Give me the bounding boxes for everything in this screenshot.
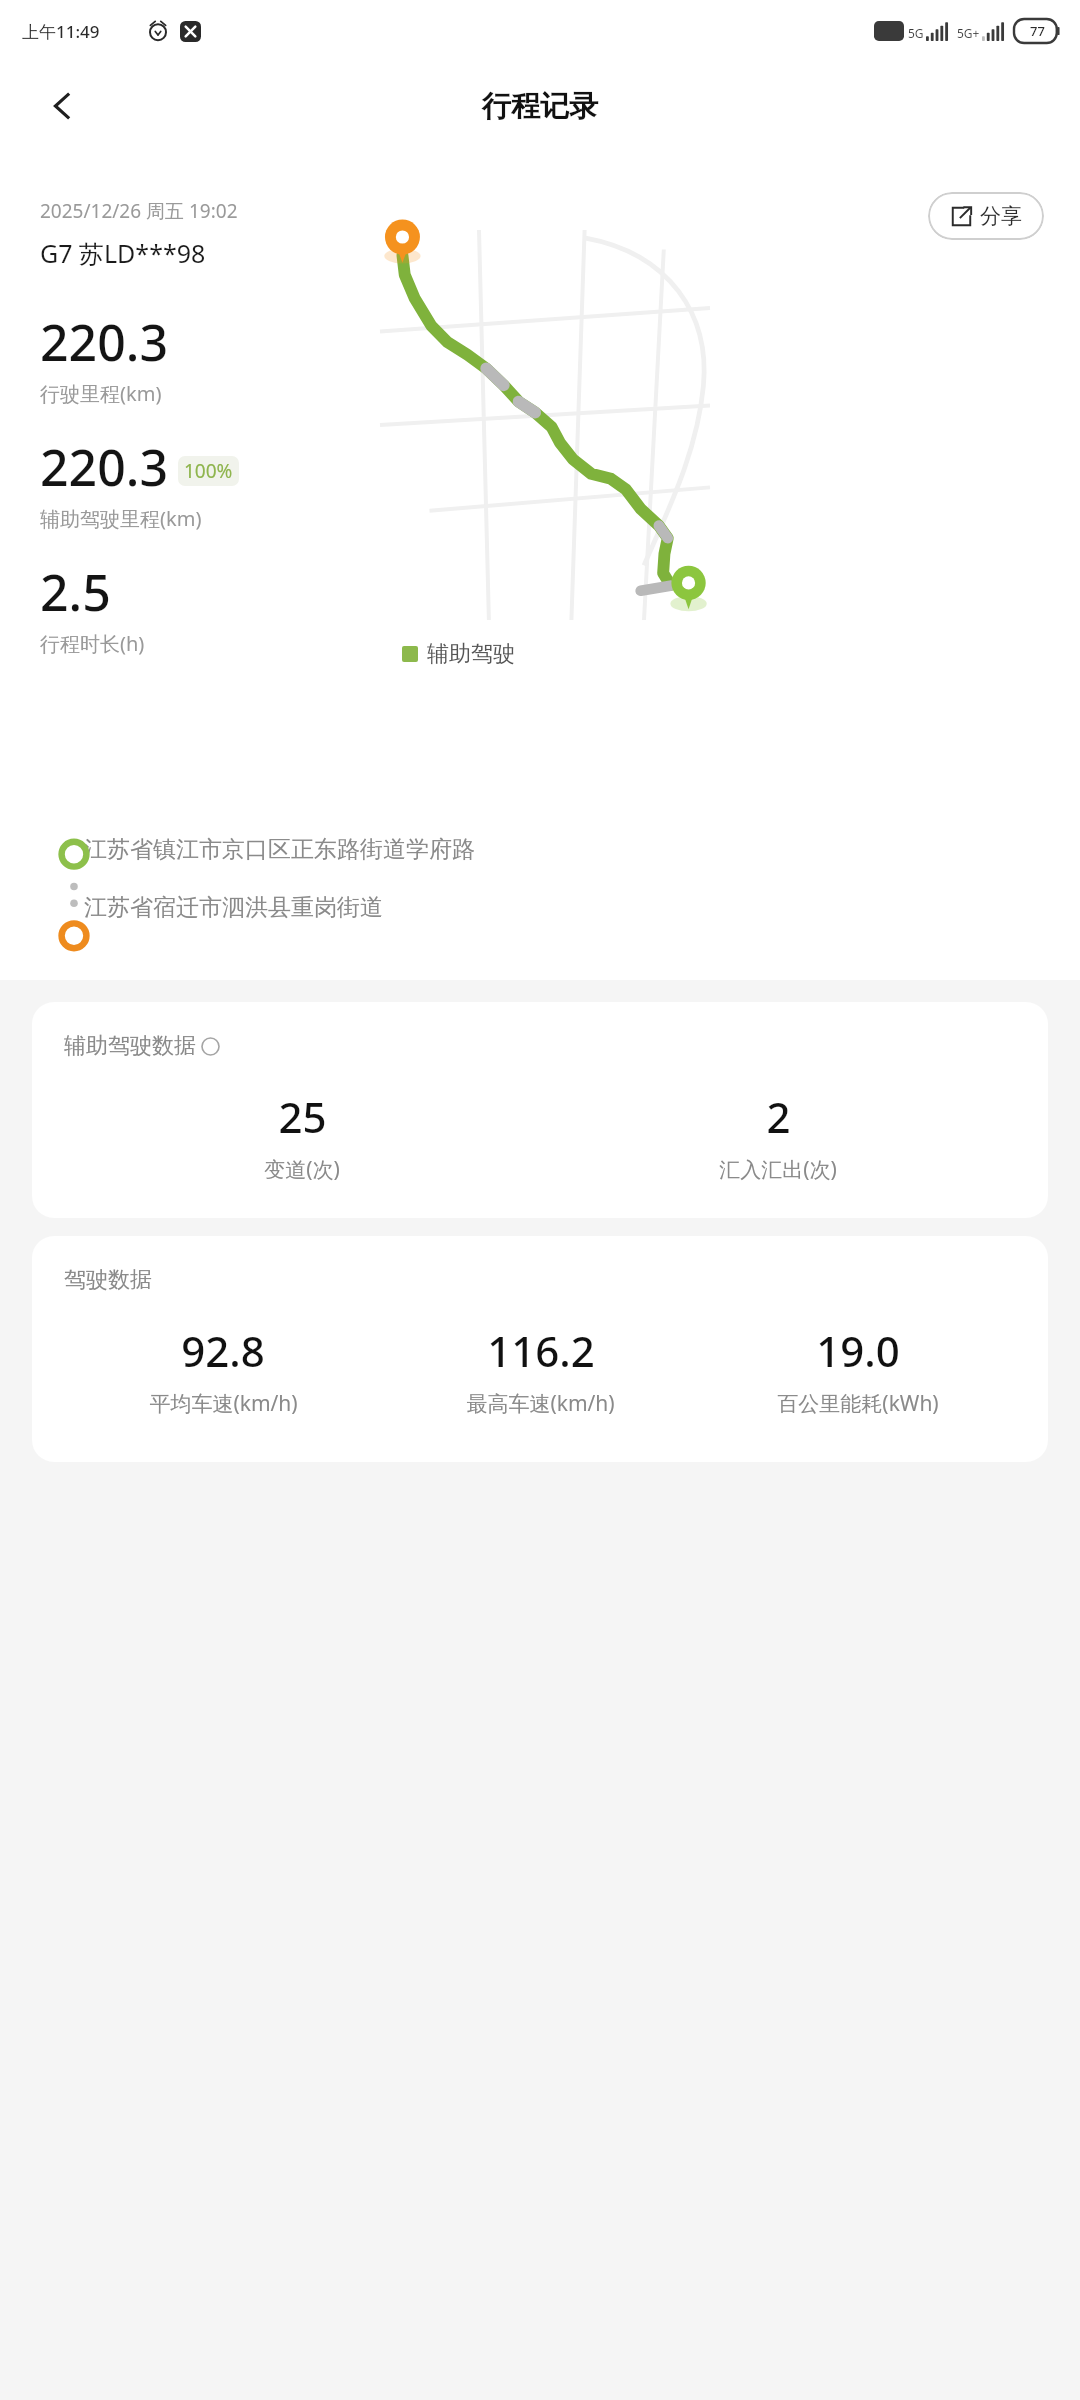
staticText: 19.0 [816,1322,900,1379]
staticText: 行驶里程(km) [40,380,162,407]
button[interactable]: 驾驶数据 [32,1236,1048,1462]
staticText: 江苏省宿迁市泗洪县重岗街道 [84,893,383,922]
staticText: 行程时长(h) [40,630,145,657]
staticText: 辅助驾驶数据 [64,1032,196,1060]
staticText: 辅助驾驶里程(km) [40,505,202,532]
staticText: 分享 [980,203,1022,229]
button[interactable]: Back [34,78,90,134]
staticText: 2 [766,1088,791,1145]
staticText: 100% [184,458,233,484]
staticText: 百公里能耗(kWh) [777,1389,939,1418]
staticText: 220.3 [40,308,168,376]
staticText: 汇入汇出(次) [719,1155,837,1184]
staticText: 行程记录 [482,88,598,125]
staticText: 最高车速(km/h) [466,1389,615,1418]
staticText: 25 [278,1088,327,1145]
button[interactable]: 分享 [928,192,1044,240]
staticText: G7 苏LD***98 [40,236,206,270]
staticText: 2025/12/26 周五 19:02 [40,198,238,224]
staticText: 92.8 [181,1322,265,1379]
staticText: 江苏省镇江市京口区正东路街道学府路 [84,835,475,864]
staticText: 辅助驾驶 [427,640,515,668]
staticText: 驾驶数据 [64,1266,152,1294]
staticText: 5G+ [957,25,980,41]
staticText: 2.5 [40,558,111,626]
button[interactable]: 辅助驾驶数据 [32,1002,1048,1218]
staticText: 变道(次) [264,1155,340,1184]
staticText: 平均车速(km/h) [149,1389,298,1418]
staticText: 77 [1030,22,1045,40]
staticText: 5G [908,25,924,41]
staticText: 上午11:49 [22,20,100,43]
staticText: 116.2 [487,1322,595,1379]
staticText: 220.3 [40,433,168,501]
